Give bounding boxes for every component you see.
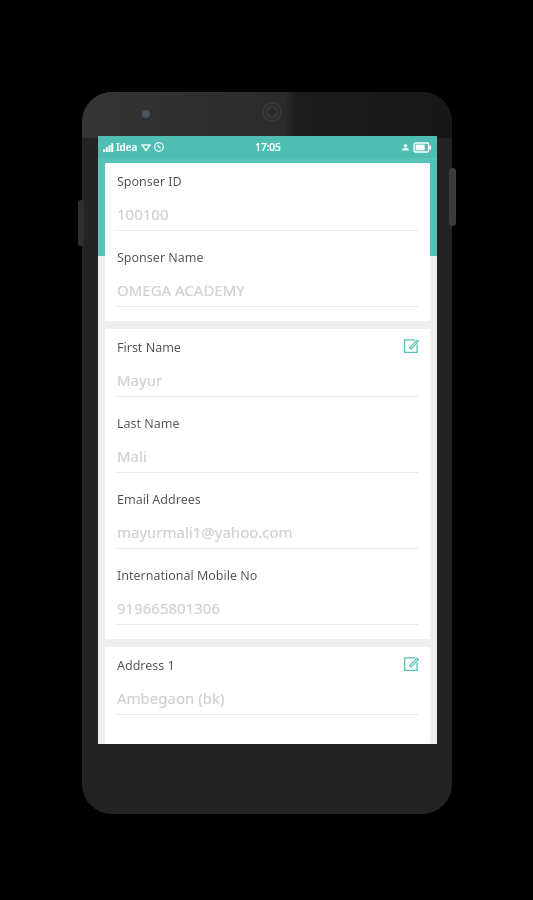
staticText: Sponser ID bbox=[117, 173, 182, 190]
staticText: Mayur bbox=[117, 370, 163, 390]
button[interactable]: Sponser ID bbox=[105, 163, 430, 321]
staticText: OMEGA ACADEMY bbox=[117, 280, 245, 300]
staticText: Ambegaon (bk) bbox=[117, 688, 225, 708]
staticText: International Mobile No bbox=[117, 567, 258, 584]
staticText: Mali bbox=[117, 446, 147, 466]
staticText: Address 1 bbox=[117, 657, 175, 674]
staticText: Sponser Name bbox=[117, 249, 204, 266]
staticText: Email Addrees bbox=[117, 491, 201, 508]
button[interactable]: Edit bbox=[399, 652, 423, 676]
staticText: Last Name bbox=[117, 415, 180, 432]
button[interactable]: Edit bbox=[399, 334, 423, 358]
button[interactable]: First Name bbox=[105, 329, 430, 639]
staticText: 100100 bbox=[117, 204, 169, 224]
staticText: First Name bbox=[117, 339, 181, 356]
staticText: 17:05 bbox=[255, 140, 281, 154]
staticText: Idea bbox=[116, 140, 138, 154]
staticText: 919665801306 bbox=[117, 598, 220, 618]
staticText: mayurmali1@yahoo.com bbox=[117, 522, 293, 542]
button[interactable]: Address 1 bbox=[105, 647, 430, 744]
